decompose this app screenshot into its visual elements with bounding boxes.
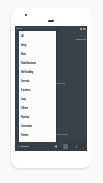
staticText: Formula	[21, 79, 30, 83]
staticText: Data Structures	[21, 61, 36, 65]
staticText: Downloaded	[76, 38, 87, 41]
staticText: All	[21, 34, 24, 38]
staticText: Conversion	[21, 124, 32, 128]
staticText: Array	[21, 43, 27, 47]
staticText: Functions	[21, 88, 31, 92]
button[interactable]: Formula	[19, 76, 56, 85]
button[interactable]: File Handling	[19, 67, 56, 76]
staticText: Programs stored by user	[48, 133, 68, 136]
button[interactable]: Back	[52, 142, 58, 151]
button[interactable]: Pattern	[19, 130, 56, 139]
staticText: Categories	[20, 145, 29, 148]
button[interactable]: Functions	[19, 85, 56, 94]
button[interactable]: Home	[62, 142, 68, 151]
staticText: 11:37 ••	[16, 27, 23, 30]
button[interactable]: Number	[19, 112, 56, 121]
staticText: Basic	[21, 52, 26, 56]
button[interactable]: Loop	[19, 94, 56, 103]
staticText: Others	[21, 106, 28, 110]
button[interactable]: Array	[19, 40, 56, 49]
staticText: No data found	[53, 82, 65, 85]
staticText: Pattern	[21, 133, 29, 137]
button[interactable]: Categories	[17, 142, 29, 151]
button[interactable]: Recent apps	[73, 142, 79, 151]
button[interactable]: All	[19, 31, 56, 40]
staticText: Number	[21, 115, 30, 119]
button[interactable]: Data Structures	[19, 58, 56, 67]
button[interactable]: Conversion	[19, 121, 56, 130]
button[interactable]: Basic	[19, 49, 56, 58]
button[interactable]: Others	[19, 103, 56, 112]
staticText: Loop	[21, 97, 26, 101]
staticText: File Handling	[21, 70, 33, 74]
